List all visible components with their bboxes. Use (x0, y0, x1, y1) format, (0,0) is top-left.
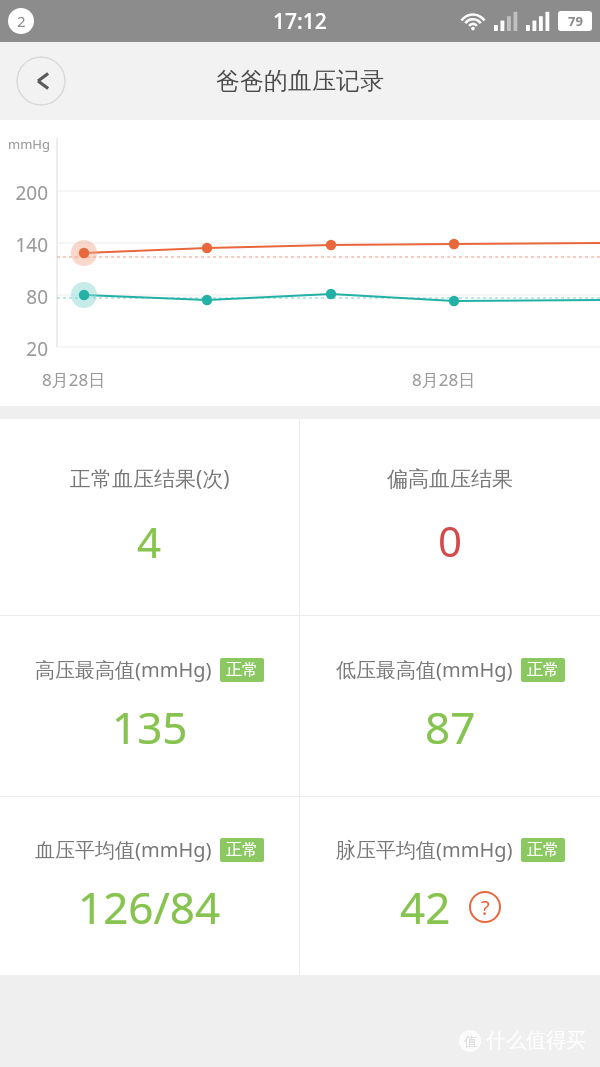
staticText: 正常 (226, 660, 258, 680)
staticText: 脉压平均值(mmHg) (336, 836, 513, 863)
staticText: 值 (464, 1033, 477, 1049)
staticText: 140 (0, 232, 48, 258)
staticText: 200 (0, 180, 48, 206)
staticText: 8月28日 (42, 368, 106, 391)
staticText: mmHg (8, 135, 50, 153)
button[interactable]: Back (16, 56, 66, 106)
staticText: 79 (568, 12, 583, 30)
staticText: 正常血压结果(次) (70, 464, 230, 493)
staticText: 血压平均值(mmHg) (35, 836, 212, 863)
button[interactable]: 低压最高值(mmHg) (300, 616, 600, 796)
staticText: 135 (112, 697, 188, 757)
staticText: 4 (137, 513, 162, 570)
staticText: ? (481, 894, 490, 921)
staticText: 低压最高值(mmHg) (336, 656, 513, 683)
staticText: 42 (400, 877, 451, 937)
staticText: 偏高血压结果 (387, 466, 513, 492)
staticText: 87 (425, 697, 476, 757)
staticText: 8月28日 (412, 368, 476, 391)
staticText: 20 (0, 336, 48, 362)
staticText: 爸爸的血压记录 (216, 66, 384, 96)
staticText: 80 (0, 284, 48, 310)
button[interactable]: 血压平均值(mmHg) (0, 797, 299, 975)
button[interactable]: 偏高血压结果 (300, 419, 600, 615)
staticText: 17:12 (273, 7, 327, 36)
staticText: 正常 (527, 660, 559, 680)
staticText: 正常 (226, 840, 258, 860)
staticText: 2 (17, 11, 26, 31)
button[interactable]: Help (469, 891, 501, 923)
staticText: 什么值得买 (486, 1028, 586, 1053)
staticText: 高压最高值(mmHg) (35, 656, 212, 683)
staticText: 正常 (527, 840, 559, 860)
staticText: 0 (438, 512, 463, 569)
button[interactable]: 高压最高值(mmHg) (0, 616, 299, 796)
staticText: 126/84 (78, 877, 221, 937)
button[interactable]: 正常血压结果(次) (0, 419, 299, 615)
button[interactable]: 脉压平均值(mmHg) (300, 797, 600, 975)
